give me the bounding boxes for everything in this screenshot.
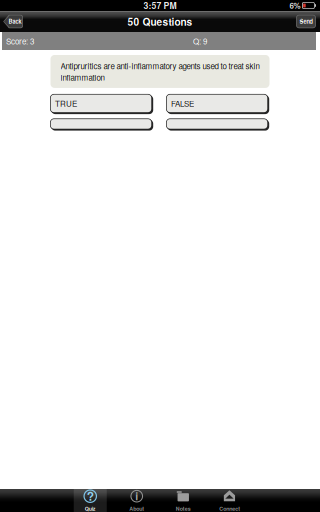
button[interactable]	[165, 117, 269, 130]
staticText: About	[129, 505, 144, 512]
staticText: ?	[87, 487, 94, 504]
staticText: Connect	[219, 505, 240, 512]
button[interactable]: ?	[74, 489, 107, 512]
staticText: 6%	[289, 0, 300, 11]
staticText: Score: 3	[6, 35, 34, 47]
staticText: 3:57 PM	[143, 0, 176, 12]
staticText: TRUE	[55, 98, 77, 109]
staticText: i	[135, 488, 138, 504]
staticText: Antipruritics are anti-inflammatory agen…	[60, 60, 259, 83]
button[interactable]	[49, 117, 153, 130]
staticText: Quiz	[85, 505, 96, 512]
button[interactable]: Connect	[213, 489, 246, 512]
button[interactable]: Notes	[167, 489, 200, 512]
staticText: Notes	[176, 505, 191, 512]
button[interactable]: i	[120, 489, 153, 512]
staticText: Q: 9	[193, 35, 207, 47]
button[interactable]: TRUE	[49, 93, 153, 114]
staticText: Send	[299, 17, 312, 25]
staticText: FALSE	[171, 98, 194, 109]
staticText: Back	[8, 17, 21, 25]
button[interactable]: Back	[3, 15, 23, 28]
staticText: 50 Questions	[127, 14, 192, 29]
button[interactable]: FALSE	[165, 93, 269, 114]
button[interactable]: Send	[296, 15, 316, 28]
